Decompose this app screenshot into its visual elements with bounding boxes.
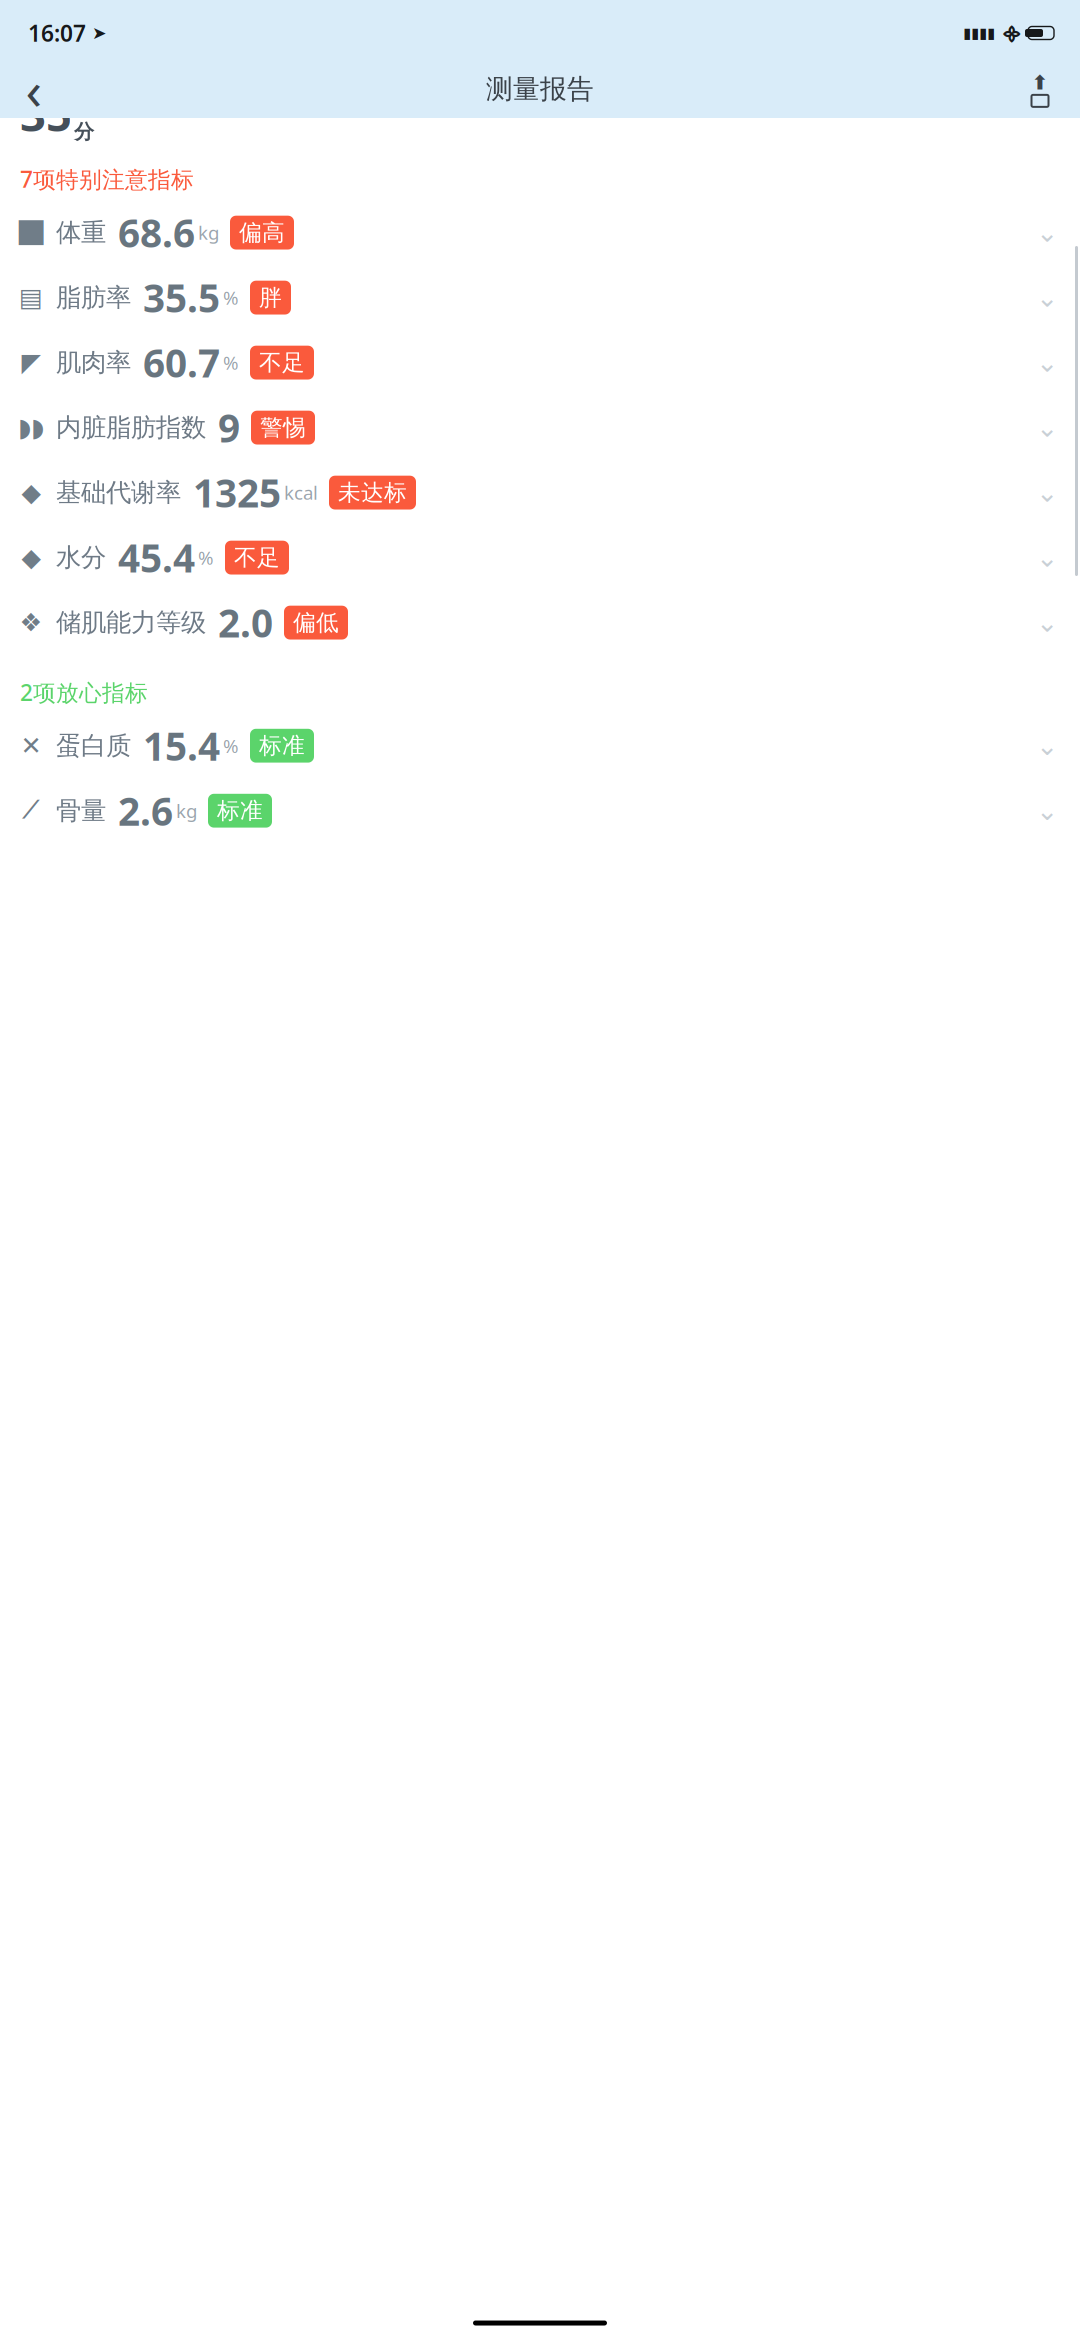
staticText: ᯽ <box>1001 21 1022 45</box>
staticText: 16:07 <box>28 18 86 48</box>
staticText: ⌄ <box>1036 607 1058 638</box>
staticText: 68.6 <box>118 207 195 258</box>
staticText: 肌肉率 <box>56 347 131 378</box>
staticText: ◆ <box>21 543 40 572</box>
staticText: kg <box>198 220 219 245</box>
staticText: 脂肪率 <box>56 282 131 313</box>
staticText: % <box>223 285 239 310</box>
button[interactable]: ✕ <box>0 713 1080 778</box>
button[interactable]: ▤ <box>0 265 1080 330</box>
staticText: kcal <box>284 480 318 505</box>
staticText: 骨量 <box>56 795 106 826</box>
button[interactable]: Back <box>8 63 60 115</box>
staticText: 不足 <box>259 349 305 376</box>
staticText: % <box>198 545 214 570</box>
staticText: 35 <box>20 84 72 144</box>
staticText: 15.4 <box>143 720 220 771</box>
staticText: ⌄ <box>1036 347 1058 378</box>
staticText: 储肌能力等级 <box>56 607 206 638</box>
staticText: 标准 <box>259 732 305 760</box>
staticText: 9 <box>218 402 240 453</box>
staticText: 35.5 <box>143 272 220 323</box>
staticText: ⌄ <box>1036 796 1058 826</box>
button[interactable]: ⟋ <box>0 778 1080 843</box>
staticText: 测量报告 <box>486 73 594 105</box>
staticText: ⌄ <box>1036 412 1058 443</box>
staticText: 未达标 <box>338 479 407 506</box>
button[interactable]: ◆ <box>0 460 1080 525</box>
staticText: 水分 <box>56 542 106 573</box>
staticText: ▤ <box>19 283 43 312</box>
staticText: 基础代谢率 <box>56 477 181 508</box>
staticText: 警惕 <box>260 414 306 441</box>
button[interactable]: ◤ <box>0 330 1080 395</box>
staticText: 蛋白质 <box>56 730 131 761</box>
staticText: ❖ <box>19 608 42 637</box>
staticText: 内脏脂肪指数 <box>56 412 206 443</box>
staticText: 2项放心指标 <box>20 677 148 707</box>
staticText: ⟋ <box>22 798 40 823</box>
staticText: 1325 <box>193 467 281 518</box>
button[interactable]: Share <box>1014 63 1066 115</box>
staticText: % <box>223 350 239 375</box>
button[interactable]: ◆ <box>0 525 1080 590</box>
staticText: 7项特别注意指标 <box>20 164 194 194</box>
staticText: 偏高 <box>239 219 285 246</box>
button[interactable]: ❖ <box>0 590 1080 655</box>
staticText: ◗◗ <box>18 413 44 442</box>
button[interactable]: ⬛︎ <box>0 200 1080 265</box>
staticText: 体重 <box>56 217 106 248</box>
staticText: 45.4 <box>118 532 195 583</box>
staticText: ‹ <box>25 54 42 124</box>
staticText: kg <box>176 798 197 823</box>
staticText: ⌄ <box>1036 542 1058 573</box>
staticText: ⌄ <box>1036 731 1058 761</box>
staticText: 不足 <box>234 544 280 571</box>
staticText: 2.6 <box>118 785 173 836</box>
staticText: ➤ <box>92 23 107 43</box>
staticText: ⌄ <box>1036 282 1058 313</box>
staticText: 偏低 <box>293 609 339 636</box>
staticText: 胖 <box>259 284 282 311</box>
staticText: 分 <box>74 119 94 144</box>
staticText: 2.0 <box>218 597 273 648</box>
staticText: ✕ <box>20 731 41 760</box>
staticText: ⌄ <box>1036 477 1058 508</box>
staticText: 60.7 <box>143 337 220 388</box>
staticText: % <box>223 733 239 758</box>
staticText: ◆ <box>21 478 40 507</box>
staticText: ⬛︎ <box>18 220 43 245</box>
staticText: ▮▮▮▮ <box>963 25 995 41</box>
staticText: ◤ <box>21 348 40 377</box>
staticText: ⬆ <box>1031 71 1048 94</box>
button[interactable]: ◗◗ <box>0 395 1080 460</box>
staticText: 标准 <box>217 797 263 825</box>
staticText: ⌄ <box>1036 217 1058 248</box>
